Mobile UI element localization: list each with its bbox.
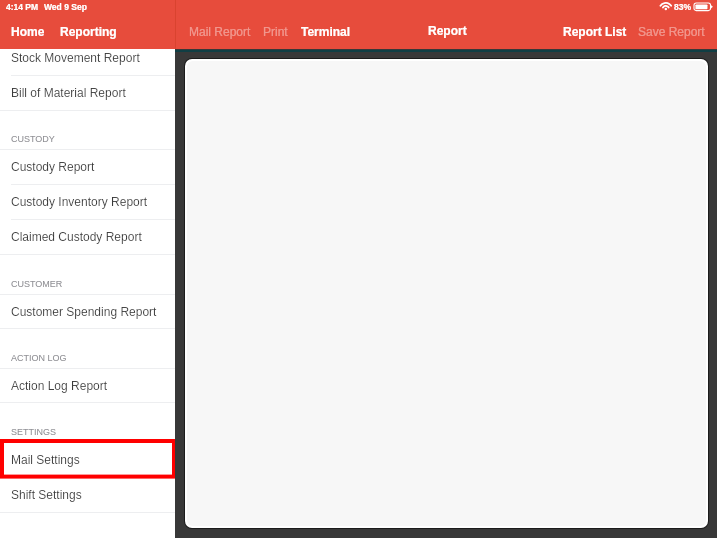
staticText: SETTINGS	[11, 427, 57, 437]
button[interactable]: Customer Spending Report	[0, 294, 175, 328]
staticText: Mail Settings	[11, 453, 80, 466]
staticText: Reporting	[60, 25, 117, 38]
button[interactable]: Custody Report	[0, 149, 175, 184]
button[interactable]: Reporting	[57, 19, 120, 43]
button[interactable]: Action Log Report	[0, 368, 175, 402]
button[interactable]: Shift Settings	[0, 477, 175, 512]
staticText: ACTION LOG	[11, 353, 67, 363]
button[interactable]: Bill of Material Report	[0, 75, 175, 110]
staticText: Bill of Material Report	[11, 86, 126, 99]
staticText: Shift Settings	[11, 488, 82, 501]
button[interactable]: Mail Report	[186, 19, 254, 43]
staticText: Print	[263, 25, 288, 38]
staticText: Claimed Custody Report	[11, 230, 142, 243]
staticText: 83%	[674, 2, 692, 11]
staticText: Custody Inventory Report	[11, 195, 148, 208]
button[interactable]: Report List	[561, 19, 629, 43]
staticText: Customer Spending Report	[11, 305, 157, 318]
button[interactable]: Print	[258, 19, 292, 43]
staticText: CUSTOMER	[11, 279, 63, 289]
staticText: Stock Movement Report	[11, 51, 140, 64]
button[interactable]: Claimed Custody Report	[0, 219, 175, 254]
staticText: Report	[428, 24, 467, 37]
button[interactable]: Mail Settings	[0, 442, 175, 477]
other: Wi-Fi signal	[658, 0, 674, 12]
staticText: Custody Report	[11, 160, 95, 173]
staticText: 4:14 PM	[6, 2, 39, 11]
button[interactable]: Stock Movement Report	[0, 40, 175, 75]
button[interactable]: Custody Inventory Report	[0, 184, 175, 219]
staticText: Action Log Report	[11, 379, 108, 392]
staticText: Save Report	[638, 25, 705, 38]
staticText: Wed 9 Sep	[44, 2, 87, 11]
staticText: CUSTODY	[11, 134, 55, 144]
button[interactable]: Home	[11, 19, 45, 43]
staticText: Mail Report	[189, 25, 251, 38]
button[interactable]: Terminal	[300, 19, 352, 43]
staticText: Report List	[563, 25, 627, 38]
staticText: Home	[11, 25, 45, 38]
button[interactable]: Save Report	[636, 19, 707, 43]
staticText: Terminal	[301, 25, 351, 38]
other: Battery 83 percent	[693, 1, 716, 13]
